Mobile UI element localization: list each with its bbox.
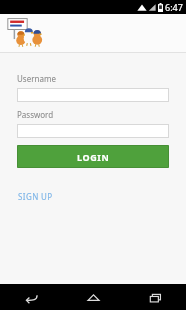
button[interactable]: Recent apps <box>124 284 186 310</box>
staticText: 6:47 <box>165 1 183 13</box>
button[interactable]: Home <box>62 284 124 310</box>
button[interactable]: LOGIN <box>17 145 169 168</box>
button[interactable] <box>17 88 169 102</box>
button[interactable]: SIGN UP <box>17 189 54 204</box>
staticText: SIGN UP <box>18 191 53 202</box>
button[interactable]: Back <box>0 284 62 310</box>
staticText: LOGIN <box>77 151 110 163</box>
staticText: Username <box>17 73 56 84</box>
staticText: Password <box>17 109 54 120</box>
button[interactable] <box>17 124 169 138</box>
button[interactable]: App logo <box>7 17 49 49</box>
